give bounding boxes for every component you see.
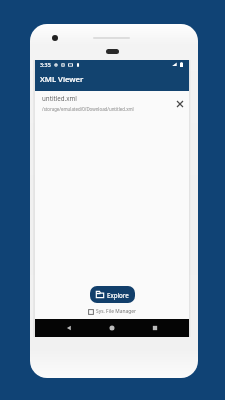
- staticText: untitled.xml: [42, 94, 77, 102]
- button[interactable]: Recents: [146, 319, 164, 337]
- staticText: Sys. File Manager: [96, 308, 136, 315]
- button[interactable]: Back: [60, 319, 78, 337]
- staticText: XML Viewer: [40, 74, 84, 85]
- staticText: 3:35: [40, 61, 51, 68]
- button[interactable]: Home: [103, 319, 121, 337]
- staticText: Explore: [107, 291, 129, 299]
- button[interactable]: Explore: [90, 286, 135, 303]
- staticText: /storage/emulated/0/Download/untitled.xm…: [42, 106, 134, 112]
- button[interactable]: Close: [173, 97, 187, 111]
- button[interactable]: Sys. File Manager: [88, 308, 136, 315]
